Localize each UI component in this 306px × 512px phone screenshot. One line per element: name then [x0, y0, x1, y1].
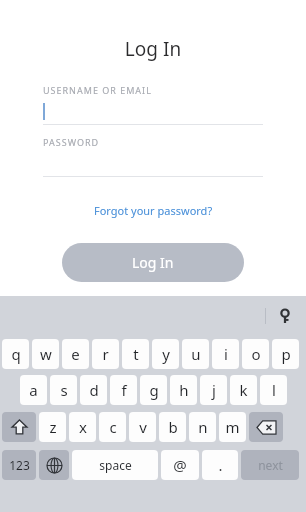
- staticText: 123: [9, 457, 30, 473]
- button[interactable]: Backspace: [249, 412, 283, 442]
- button[interactable]: h: [170, 375, 197, 405]
- button[interactable]: c: [99, 412, 126, 442]
- button[interactable]: d: [80, 375, 107, 405]
- staticText: next: [258, 457, 283, 473]
- staticText: p: [281, 344, 291, 364]
- staticText: .: [218, 455, 223, 475]
- staticText: d: [89, 380, 99, 400]
- staticText: c: [109, 417, 117, 437]
- staticText: e: [71, 344, 80, 364]
- button[interactable]: v: [129, 412, 156, 442]
- staticText: @: [173, 455, 187, 475]
- button[interactable]: o: [242, 339, 269, 369]
- staticText: w: [40, 344, 52, 364]
- button[interactable]: f: [110, 375, 137, 405]
- staticText: f: [121, 380, 127, 400]
- button[interactable]: .: [202, 450, 238, 480]
- staticText: PASSWORD: [43, 136, 100, 148]
- button[interactable]: Forgot your password?: [88, 197, 219, 224]
- button[interactable]: w: [32, 339, 59, 369]
- button[interactable]: i: [212, 339, 239, 369]
- button[interactable]: Passwords: [270, 301, 300, 331]
- button[interactable]: l: [260, 375, 287, 405]
- staticText: h: [179, 380, 189, 400]
- staticText: l: [272, 380, 276, 400]
- button[interactable]: x: [69, 412, 96, 442]
- staticText: r: [102, 344, 109, 364]
- button[interactable]: Change keyboard: [39, 450, 69, 480]
- button[interactable]: y: [152, 339, 179, 369]
- button[interactable]: 123: [2, 450, 36, 480]
- staticText: space: [99, 457, 132, 473]
- button[interactable]: Log In: [62, 243, 244, 282]
- button[interactable]: p: [272, 339, 299, 369]
- button[interactable]: g: [140, 375, 167, 405]
- staticText: y: [162, 344, 170, 364]
- button[interactable]: n: [189, 412, 216, 442]
- staticText: USERNAME OR EMAIL: [43, 84, 152, 96]
- staticText: z: [49, 417, 57, 437]
- button[interactable]: b: [159, 412, 186, 442]
- staticText: j: [212, 380, 216, 400]
- staticText: x: [79, 417, 87, 437]
- staticText: s: [60, 380, 68, 400]
- button[interactable]: t: [122, 339, 149, 369]
- button[interactable]: next: [241, 450, 299, 480]
- staticText: u: [191, 344, 201, 364]
- staticText: b: [168, 417, 178, 437]
- staticText: t: [133, 344, 139, 364]
- button[interactable]: z: [39, 412, 66, 442]
- button[interactable]: r: [92, 339, 119, 369]
- staticText: v: [139, 417, 147, 437]
- button[interactable]: m: [219, 412, 246, 442]
- staticText: Log In: [0, 36, 306, 62]
- button[interactable]: [43, 96, 263, 124]
- staticText: o: [251, 344, 261, 364]
- button[interactable]: @: [161, 450, 199, 480]
- staticText: Log In: [132, 253, 174, 272]
- staticText: k: [239, 380, 248, 400]
- button[interactable]: Shift: [2, 412, 36, 442]
- button[interactable]: e: [62, 339, 89, 369]
- staticText: m: [225, 417, 240, 437]
- button[interactable]: q: [2, 339, 29, 369]
- staticText: i: [224, 344, 228, 364]
- staticText: Forgot your password?: [94, 203, 213, 218]
- staticText: a: [29, 380, 38, 400]
- button[interactable]: u: [182, 339, 209, 369]
- button[interactable]: k: [230, 375, 257, 405]
- staticText: q: [11, 344, 21, 364]
- button[interactable]: a: [20, 375, 47, 405]
- staticText: n: [198, 417, 208, 437]
- button[interactable]: space: [72, 450, 158, 480]
- button[interactable]: j: [200, 375, 227, 405]
- button[interactable]: s: [50, 375, 77, 405]
- staticText: g: [149, 380, 159, 400]
